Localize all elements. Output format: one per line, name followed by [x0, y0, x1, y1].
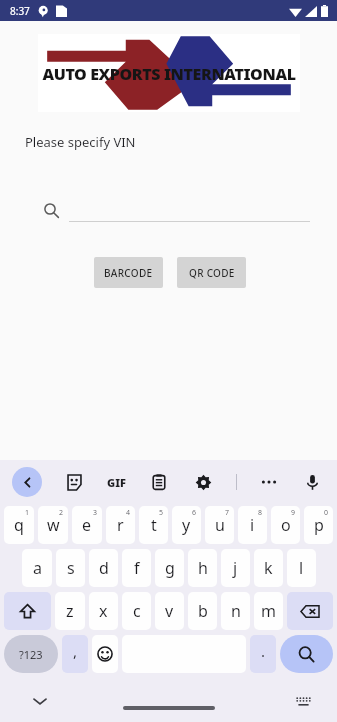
staticText: q: [14, 514, 24, 536]
button[interactable]: .: [250, 635, 276, 673]
staticText: u: [215, 514, 225, 536]
button[interactable]: n: [221, 592, 250, 630]
button[interactable]: z: [55, 592, 85, 630]
staticText: 0: [324, 508, 329, 518]
staticText: 2: [59, 508, 64, 518]
button[interactable]: BARCODE: [94, 257, 163, 288]
staticText: m: [261, 600, 276, 622]
button[interactable]: e: [72, 506, 102, 544]
button[interactable]: b: [188, 592, 217, 630]
button[interactable]: l: [287, 549, 316, 587]
button[interactable]: s: [56, 549, 85, 587]
button[interactable]: f: [122, 549, 151, 587]
staticText: y: [182, 514, 191, 536]
button[interactable]: Clipboard: [148, 471, 170, 493]
staticText: w: [47, 514, 60, 536]
staticText: h: [198, 557, 208, 579]
button[interactable]: [69, 198, 310, 222]
button[interactable]: p: [304, 506, 333, 544]
button[interactable]: Shift: [4, 592, 51, 630]
button[interactable]: QR CODE: [177, 257, 246, 288]
button[interactable]: a: [22, 549, 52, 587]
staticText: z: [66, 600, 74, 622]
staticText: ,: [73, 641, 78, 661]
staticText: 9: [291, 508, 296, 518]
staticText: 5: [159, 508, 164, 518]
button[interactable]: ?123: [4, 635, 58, 673]
staticText: AUTO EXPORTS INTERNATIONAL: [42, 63, 296, 85]
button[interactable]: c: [122, 592, 151, 630]
staticText: g: [165, 557, 175, 579]
staticText: i: [250, 514, 255, 536]
staticText: a: [33, 557, 42, 579]
staticText: d: [99, 557, 109, 579]
staticText: r: [117, 514, 124, 536]
button[interactable]: Back: [12, 467, 42, 497]
staticText: ?123: [19, 647, 43, 662]
staticText: 8: [258, 508, 263, 518]
button[interactable]: j: [221, 549, 250, 587]
button[interactable]: Settings: [192, 471, 214, 493]
staticText: v: [165, 600, 174, 622]
staticText: 4: [126, 508, 131, 518]
staticText: 1: [25, 508, 30, 518]
staticText: p: [314, 514, 324, 536]
staticText: e: [82, 514, 92, 536]
staticText: t: [151, 514, 157, 536]
staticText: s: [67, 557, 75, 579]
staticText: QR CODE: [189, 266, 235, 280]
staticText: GIF: [107, 475, 126, 490]
button[interactable]: y: [172, 506, 201, 544]
button[interactable]: q: [4, 506, 34, 544]
button[interactable]: r: [106, 506, 135, 544]
staticText: 3: [93, 508, 98, 518]
staticText: Please specify VIN: [25, 133, 136, 151]
button[interactable]: k: [254, 549, 283, 587]
staticText: BARCODE: [104, 266, 153, 280]
staticText: 8:37: [10, 4, 30, 18]
button[interactable]: h: [188, 549, 217, 587]
staticText: o: [281, 514, 291, 536]
button[interactable]: GIF: [107, 475, 126, 490]
button[interactable]: v: [155, 592, 184, 630]
button[interactable]: Stickers: [63, 471, 85, 493]
staticText: .: [261, 641, 266, 661]
staticText: c: [133, 600, 141, 622]
button[interactable]: d: [89, 549, 118, 587]
button[interactable]: Hide keyboard: [28, 689, 52, 713]
button[interactable]: t: [139, 506, 168, 544]
button[interactable]: More options: [259, 472, 279, 492]
button[interactable]: i: [238, 506, 267, 544]
staticText: x: [99, 600, 108, 622]
button[interactable]: g: [155, 549, 184, 587]
staticText: f: [134, 557, 140, 579]
button[interactable]: Voice input: [301, 471, 323, 493]
staticText: b: [198, 600, 208, 622]
staticText: 7: [225, 508, 230, 518]
button[interactable]: o: [271, 506, 300, 544]
staticText: l: [299, 557, 304, 579]
staticText: j: [233, 557, 238, 579]
button[interactable]: m: [254, 592, 283, 630]
staticText: 6: [192, 508, 197, 518]
button[interactable]: Emoji: [92, 635, 118, 673]
button[interactable]: Switch keyboard: [291, 689, 315, 713]
button[interactable]: u: [205, 506, 234, 544]
button[interactable]: Backspace: [287, 592, 333, 630]
button[interactable]: Search: [280, 635, 333, 673]
staticText: n: [231, 600, 241, 622]
button[interactable]: w: [38, 506, 68, 544]
button[interactable]: ,: [62, 635, 88, 673]
button[interactable]: x: [89, 592, 118, 630]
staticText: k: [264, 557, 273, 579]
